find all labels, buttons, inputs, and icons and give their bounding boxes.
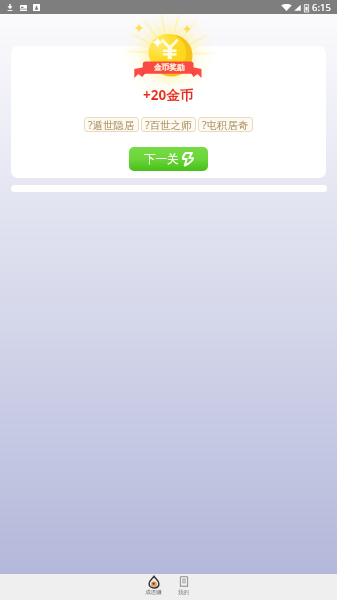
staticText: +20金币	[143, 86, 194, 104]
button[interactable]: ?屯积居奇	[198, 117, 253, 132]
staticText: 我的	[178, 589, 189, 596]
button[interactable]: 下一关	[129, 147, 208, 171]
staticText: 金币奖励	[154, 63, 185, 73]
staticText: ?屯积居奇	[202, 118, 249, 132]
staticText: 下一关	[144, 152, 179, 166]
button[interactable]: 我的	[172, 574, 195, 600]
staticText: 成语赚	[145, 589, 162, 596]
button[interactable]: 成语赚	[142, 574, 165, 600]
staticText: ?百世之师	[145, 118, 192, 132]
button[interactable]: ?百世之师	[141, 117, 196, 132]
staticText: ?遁世隐居	[88, 118, 135, 132]
button[interactable]: ?遁世隐居	[84, 117, 139, 132]
staticText: 6:15	[312, 1, 331, 14]
